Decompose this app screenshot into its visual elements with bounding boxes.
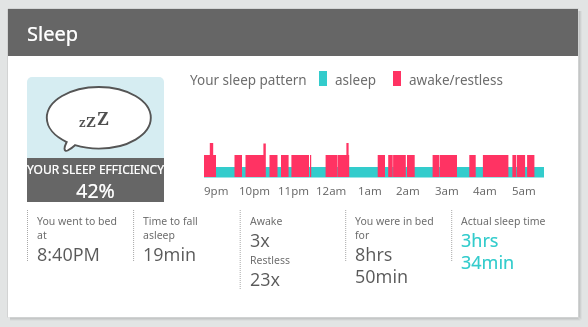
staticText: 8:40PM	[37, 242, 100, 267]
staticText: Restless	[250, 253, 290, 267]
staticText: YOUR SLEEP EFFICIENCY	[27, 161, 164, 177]
staticText: Z	[97, 106, 110, 131]
staticText: 19min	[143, 242, 197, 267]
staticText: asleep	[335, 71, 377, 89]
staticText: 2am	[396, 183, 420, 199]
staticText: Your sleep pattern	[190, 71, 307, 89]
staticText: 5am	[512, 183, 536, 199]
staticText: 3hrs 34min	[461, 228, 515, 274]
button[interactable]: Actual sleep time	[461, 214, 561, 274]
staticText: 1am	[358, 183, 382, 199]
staticText: Z	[86, 111, 97, 131]
staticText: z	[79, 114, 86, 131]
button[interactable]: You were in bed for	[355, 214, 455, 288]
button[interactable]: You went to bed at	[37, 214, 137, 267]
staticText: Actual sleep time	[461, 214, 546, 228]
staticText: 11pm	[278, 183, 309, 199]
staticText: 42%	[27, 177, 164, 204]
staticText: 10pm	[239, 183, 270, 199]
staticText: You went to bed at	[37, 214, 117, 242]
staticText: Awake	[250, 214, 283, 228]
staticText: You were in bed for	[355, 214, 434, 242]
staticText: Sleep	[27, 20, 78, 47]
staticText: Time to fall asleep	[143, 214, 198, 242]
staticText: 8hrs 50min	[355, 242, 409, 288]
staticText: 4am	[473, 183, 497, 199]
staticText: 3am	[435, 183, 459, 199]
button[interactable]: Time to fall asleep	[143, 214, 243, 267]
staticText: 23x	[250, 267, 281, 292]
staticText: 3x	[250, 228, 270, 253]
button[interactable]: Sleep	[8, 9, 578, 56]
staticText: awake/restless	[409, 71, 503, 89]
staticText: 9pm	[204, 183, 229, 199]
staticText: 12am	[316, 183, 347, 199]
button[interactable]: Awake	[250, 214, 350, 292]
